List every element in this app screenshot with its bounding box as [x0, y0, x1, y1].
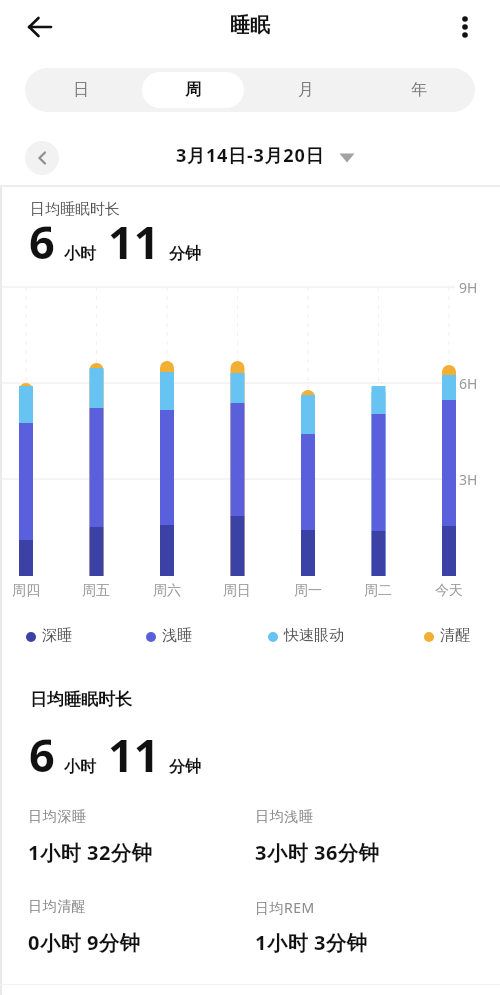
- staticText: 3小时 36分钟: [255, 839, 380, 866]
- staticText: 今天: [435, 582, 463, 600]
- staticText: 日均清醒: [28, 898, 86, 916]
- staticText: 6: [29, 724, 55, 785]
- staticText: 周: [185, 80, 201, 100]
- staticText: 0小时 9分钟: [28, 929, 141, 956]
- staticText: 日均睡眠时长: [30, 200, 120, 219]
- staticText: 年: [411, 80, 427, 100]
- staticText: 分钟: [169, 757, 201, 777]
- staticText: 9H: [459, 278, 478, 297]
- staticText: 日均REM: [255, 898, 315, 917]
- staticText: 6: [29, 211, 55, 272]
- staticText: 日均睡眠时长: [30, 689, 132, 710]
- button[interactable]: 3月14日-3月20日: [0, 143, 500, 168]
- staticText: 周日: [223, 582, 251, 600]
- staticText: 日: [73, 80, 89, 100]
- staticText: 1小时 3分钟: [255, 929, 368, 956]
- button[interactable]: 月: [249, 68, 362, 112]
- staticText: 小时: [64, 757, 96, 777]
- staticText: 快速眼动: [284, 626, 344, 645]
- staticText: 周六: [153, 582, 181, 600]
- staticText: 11: [108, 724, 160, 785]
- button[interactable]: 年: [362, 68, 475, 112]
- staticText: 月: [298, 80, 314, 100]
- staticText: 11: [108, 211, 160, 272]
- staticText: 3月14日-3月20日: [176, 143, 325, 168]
- staticText: 6H: [459, 374, 478, 393]
- button[interactable]: [25, 141, 59, 175]
- staticText: 分钟: [169, 244, 201, 264]
- staticText: 日均深睡: [28, 808, 86, 826]
- button[interactable]: [27, 15, 53, 39]
- staticText: 睡眠: [230, 13, 270, 38]
- button[interactable]: [455, 11, 475, 43]
- staticText: 深睡: [42, 626, 72, 645]
- staticText: 周五: [82, 582, 110, 600]
- staticText: 周二: [364, 582, 392, 600]
- button[interactable]: 周: [137, 68, 249, 112]
- staticText: 3H: [459, 470, 478, 489]
- staticText: 清醒: [440, 626, 470, 645]
- staticText: 1小时 32分钟: [28, 839, 153, 866]
- staticText: 浅睡: [162, 626, 192, 645]
- button[interactable]: 日: [25, 68, 137, 112]
- staticText: 日均浅睡: [255, 808, 313, 826]
- staticText: 小时: [64, 244, 96, 264]
- staticText: 周四: [12, 582, 40, 600]
- staticText: 周一: [294, 582, 322, 600]
